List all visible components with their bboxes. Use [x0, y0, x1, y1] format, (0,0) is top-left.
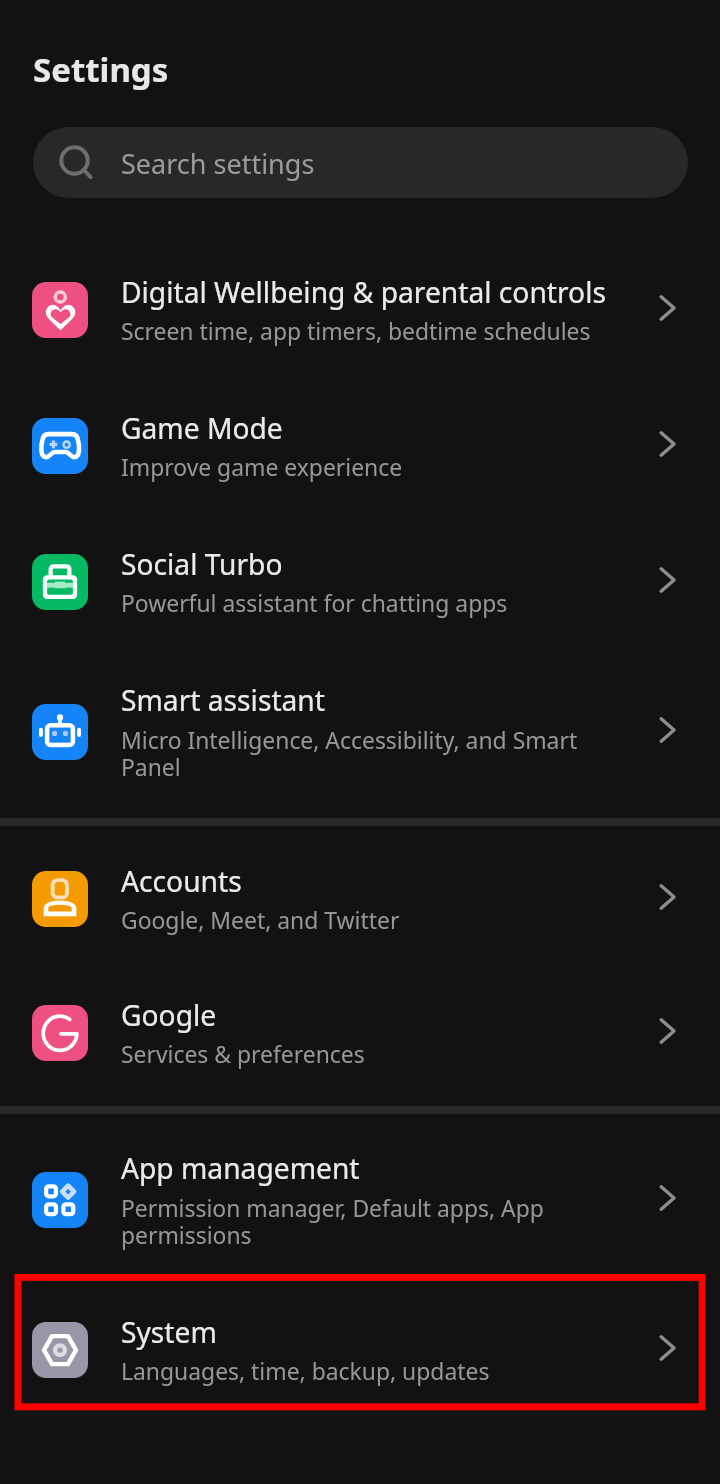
- staticText: System: [121, 1313, 217, 1351]
- other: Open Smart assistant: [655, 716, 683, 744]
- button[interactable]: App management: [0, 1130, 720, 1266]
- button[interactable]: Digital Wellbeing & parental controls: [0, 240, 720, 376]
- staticText: Search settings: [121, 145, 315, 182]
- button[interactable]: Search settings: [33, 127, 688, 198]
- staticText: Powerful assistant for chatting apps: [121, 588, 508, 619]
- staticText: Google: [121, 996, 217, 1034]
- other: Open Game Mode: [655, 430, 683, 458]
- button[interactable]: Accounts: [0, 829, 720, 965]
- other: Open App management: [655, 1184, 683, 1212]
- other: Open Accounts: [655, 883, 683, 911]
- staticText: Permission manager, Default apps, App: [121, 1193, 544, 1224]
- staticText: Game Mode: [121, 409, 283, 447]
- button[interactable]: Social Turbo: [0, 512, 720, 648]
- staticText: Smart assistant: [121, 681, 325, 719]
- button[interactable]: Game Mode: [0, 376, 720, 512]
- staticText: Panel: [121, 752, 181, 783]
- staticText: Accounts: [121, 862, 242, 900]
- staticText: App management: [121, 1149, 360, 1187]
- button[interactable]: Google: [0, 963, 720, 1099]
- staticText: Services & preferences: [121, 1039, 365, 1070]
- staticText: Digital Wellbeing & parental controls: [121, 273, 606, 311]
- other: Open System: [655, 1334, 683, 1362]
- staticText: Improve game experience: [121, 452, 403, 483]
- staticText: Languages, time, backup, updates: [121, 1356, 490, 1387]
- button[interactable]: Smart assistant: [0, 662, 720, 798]
- other: Open Digital Wellbeing & parental contro…: [655, 294, 683, 322]
- other: Open Google: [655, 1017, 683, 1045]
- staticText: Social Turbo: [121, 545, 283, 583]
- staticText: Google, Meet, and Twitter: [121, 905, 400, 936]
- staticText: Settings: [33, 47, 169, 92]
- staticText: Screen time, app timers, bedtime schedul…: [121, 316, 591, 347]
- button[interactable]: System: [0, 1280, 720, 1416]
- staticText: permissions: [121, 1220, 252, 1251]
- other: Open Social Turbo: [655, 566, 683, 594]
- staticText: Micro Intelligence, Accessibility, and S…: [121, 725, 578, 756]
